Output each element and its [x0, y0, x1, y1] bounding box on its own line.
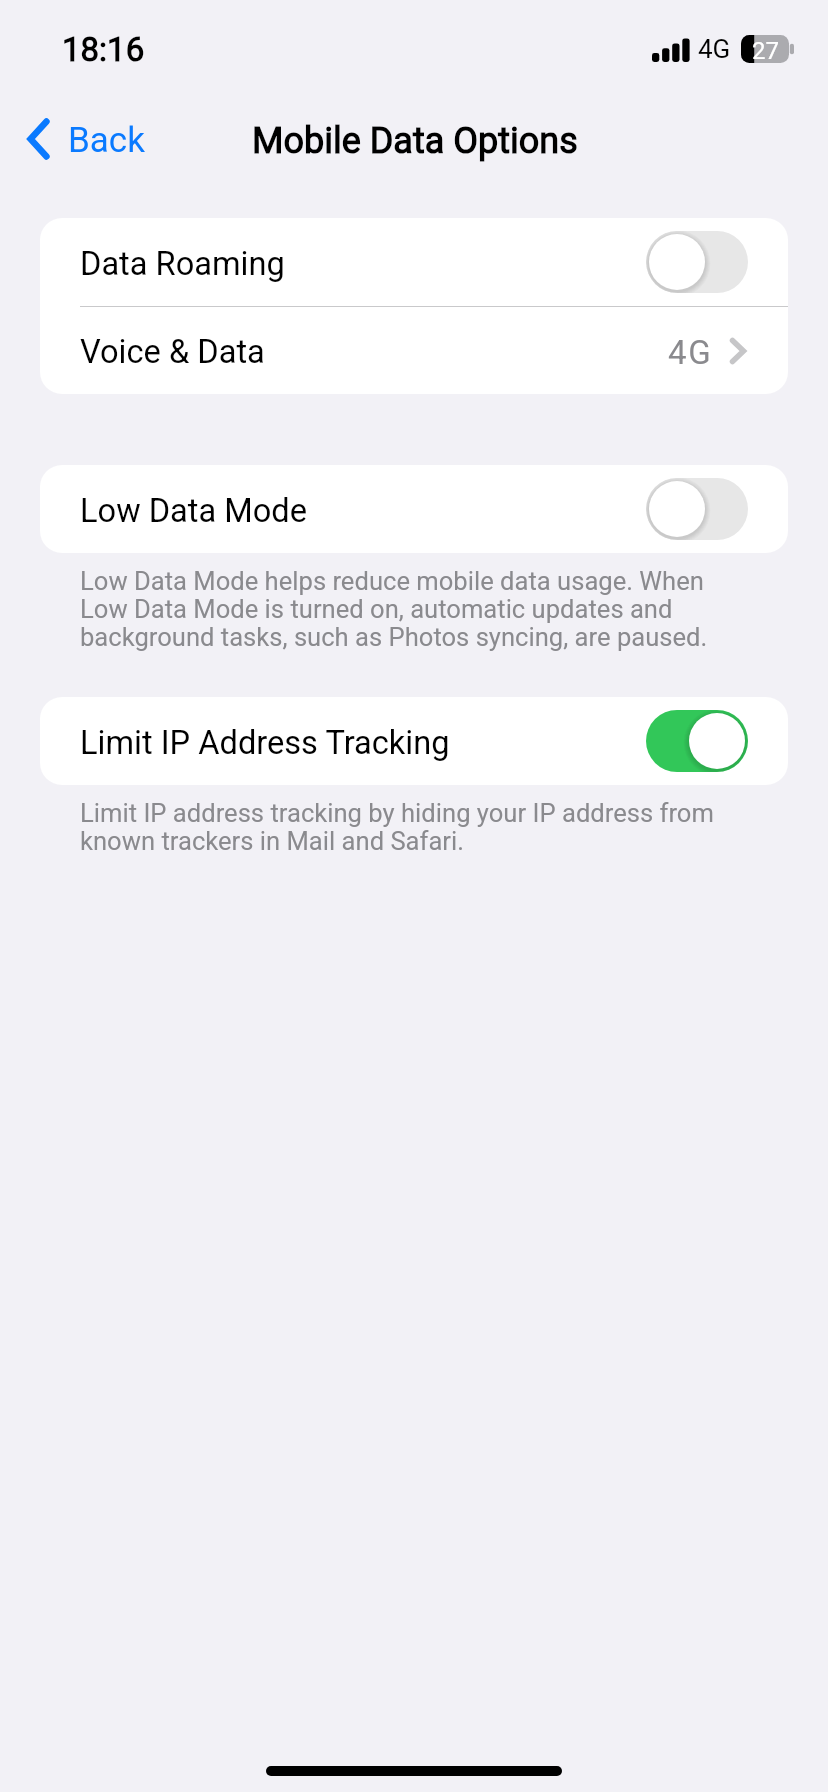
staticText: Low Data Mode helps reduce mobile data u… [80, 566, 740, 652]
button[interactable]: Low Data Mode [40, 465, 788, 553]
button[interactable]: Low Data Mode, off [646, 478, 748, 540]
staticText: Low Data Mode [80, 492, 308, 530]
button[interactable]: Back [0, 108, 161, 170]
staticText: Voice & Data [80, 333, 265, 371]
staticText: 4G [668, 333, 713, 372]
staticText: 18:16 [62, 30, 145, 69]
staticText: Limit IP Address Tracking [80, 724, 450, 762]
staticText: Limit IP address tracking by hiding your… [80, 798, 740, 856]
staticText: 27 [752, 37, 779, 65]
staticText: Back [68, 120, 145, 161]
button[interactable]: Data Roaming, off [646, 231, 748, 293]
button[interactable]: Voice & Data [40, 306, 788, 394]
button[interactable]: Limit IP Address Tracking [40, 697, 788, 785]
button[interactable]: Data Roaming [40, 218, 788, 306]
staticText: Data Roaming [80, 245, 285, 283]
staticText: 4G [698, 34, 731, 64]
button[interactable]: Limit IP Address Tracking, on [646, 710, 748, 772]
staticText: Mobile Data Options [252, 120, 578, 162]
